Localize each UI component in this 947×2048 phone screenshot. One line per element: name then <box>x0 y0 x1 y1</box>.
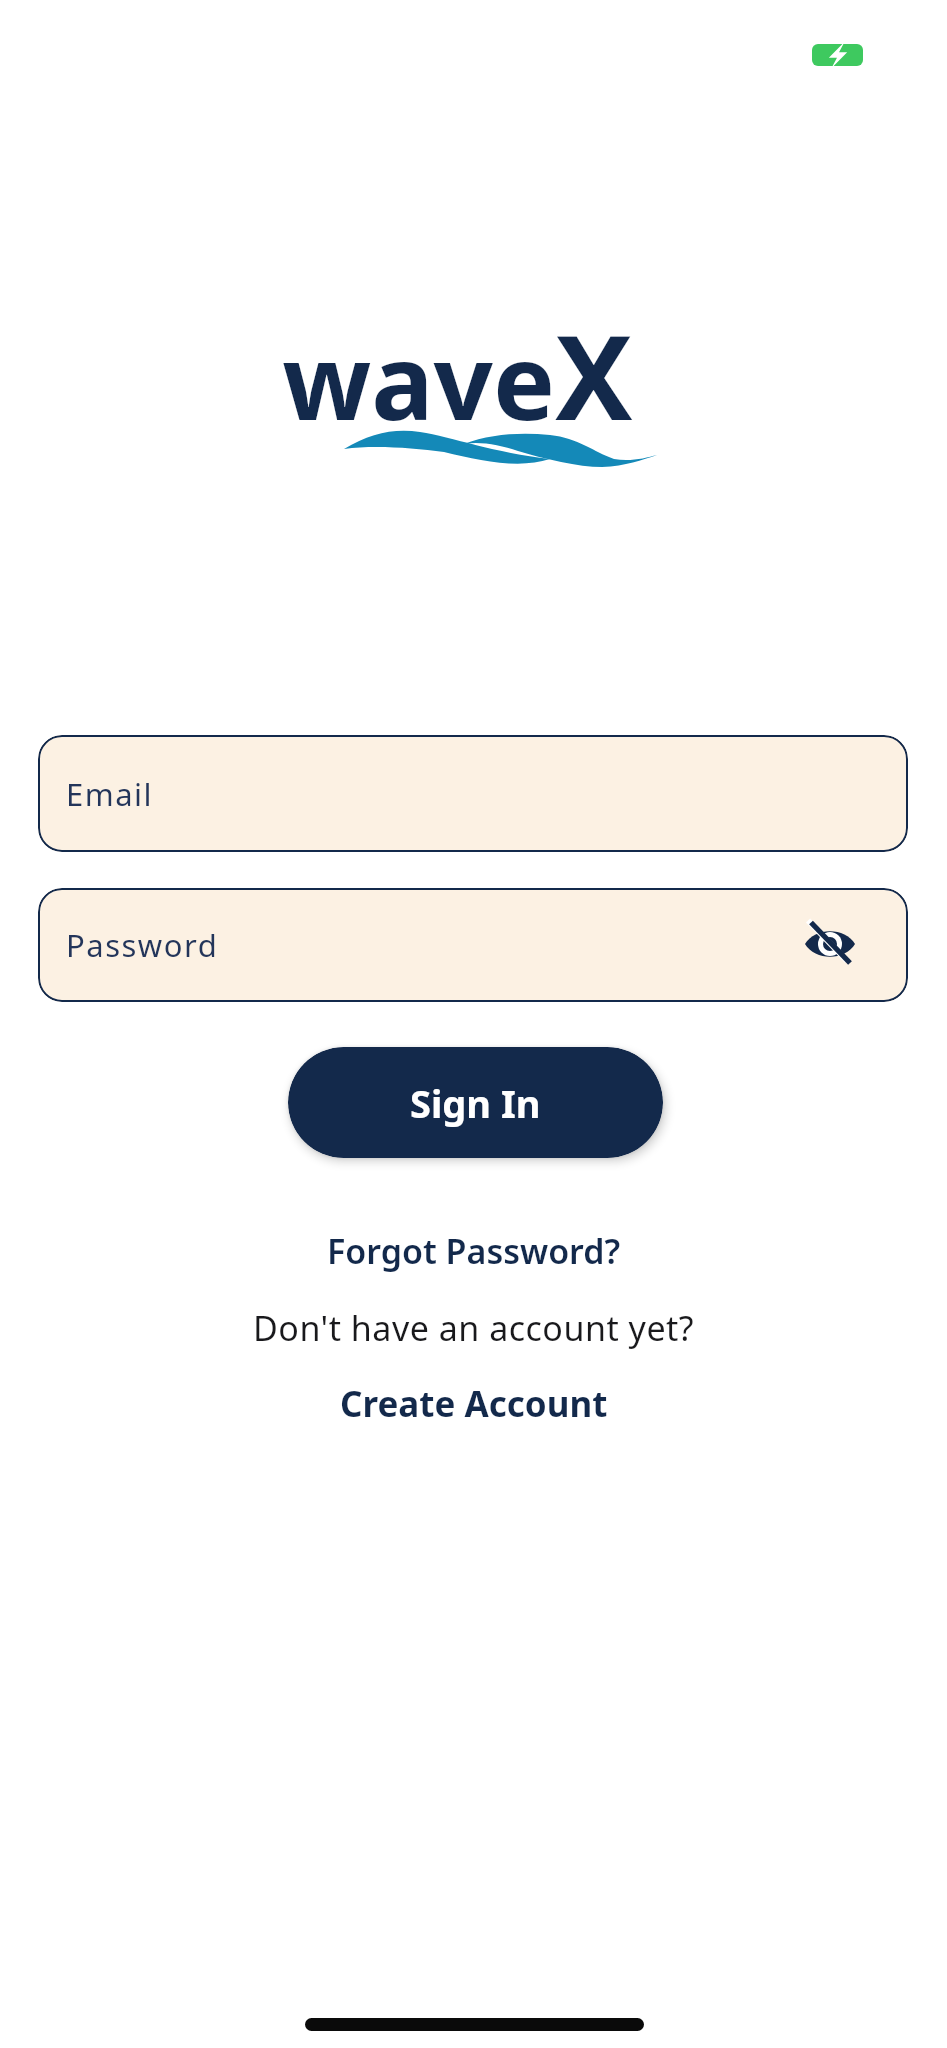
staticText: Email <box>66 773 154 815</box>
button[interactable]: Email <box>38 735 908 852</box>
button[interactable]: Forgot Password? <box>327 1228 621 1274</box>
button[interactable]: Sign In <box>288 1047 663 1158</box>
staticText: Sign In <box>410 1077 541 1129</box>
staticText: Password <box>66 924 219 966</box>
button[interactable]: Create Account <box>340 1380 608 1428</box>
staticText: Don't have an account yet? <box>253 1305 695 1351</box>
button[interactable]: Password <box>38 888 908 1002</box>
staticText: waveX <box>0 296 931 454</box>
